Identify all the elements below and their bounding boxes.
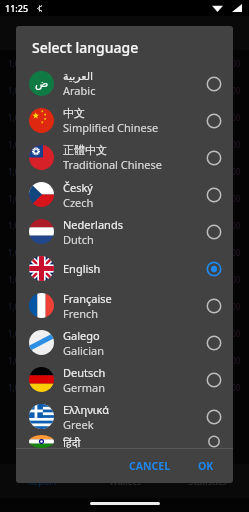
button[interactable]: Report [0, 475, 83, 487]
staticText: Report [27, 475, 57, 487]
button[interactable]: Wallets [83, 475, 166, 487]
staticText: Française [63, 291, 112, 306]
staticText: 1,000 [8, 382, 29, 393]
staticText: 中文 [63, 106, 85, 120]
button[interactable]: Galego [16, 324, 233, 361]
button[interactable]: 中文 [16, 102, 233, 139]
staticText: Arabic [63, 83, 96, 98]
staticText: Galego [63, 328, 100, 343]
button[interactable]: Ελληνικά [16, 398, 233, 435]
button[interactable]: हिंदी [16, 435, 233, 448]
staticText: Select language [32, 38, 139, 57]
staticText: 1,000 [220, 139, 241, 150]
staticText: Deutsch [63, 365, 106, 380]
staticText: Nederlands [63, 217, 123, 232]
staticText: 1,000 [8, 112, 29, 123]
staticText: 1,000 [8, 355, 29, 366]
staticText: ض [35, 77, 49, 90]
staticText: 1,000 [8, 139, 29, 150]
staticText: العربية [63, 70, 94, 83]
staticText: हिंदी [63, 435, 81, 448]
staticText: 1,000 [220, 193, 241, 204]
staticText: 1,000 [220, 328, 241, 339]
button[interactable]: Française [16, 287, 233, 324]
staticText: 1,000 [220, 112, 241, 123]
button[interactable]: Deutsch [16, 361, 233, 398]
other: Bluetooth [36, 5, 43, 12]
staticText: 1,000 [220, 85, 241, 96]
button[interactable]: OK [191, 454, 221, 478]
staticText: Wallets [109, 475, 141, 487]
staticText: 1,000 [220, 247, 241, 258]
staticText: 11:25 [5, 2, 29, 14]
staticText: French [63, 306, 99, 321]
staticText: Czech [63, 195, 94, 210]
staticText: 1,000 [220, 301, 241, 312]
staticText: 1,000 [8, 274, 29, 285]
staticText: Simplified Chinese [63, 120, 159, 135]
staticText: 1,000 [220, 274, 241, 285]
button[interactable]: English [16, 250, 233, 287]
other: Wi-Fi [212, 4, 223, 12]
staticText: 1,000 [8, 58, 29, 69]
staticText: 1,000 [8, 166, 29, 177]
staticText: OK [198, 459, 214, 473]
staticText: Dutch [63, 232, 94, 247]
staticText: Český [63, 180, 93, 195]
staticText: 1,000 [8, 301, 29, 312]
staticText: 1,000 [8, 328, 29, 339]
staticText: English [63, 261, 101, 276]
button[interactable]: Český [16, 176, 233, 213]
button[interactable]: Nederlands [16, 213, 233, 250]
staticText: 1,000 [220, 58, 241, 69]
staticText: 1,000 [220, 355, 241, 366]
staticText: Ελληνικά [63, 402, 110, 417]
staticText: Greek [63, 417, 94, 432]
staticText: 1,000 [8, 85, 29, 96]
staticText: Statistics [188, 475, 227, 487]
button[interactable]: 正體中文 [16, 139, 233, 176]
staticText: 1,000 [8, 247, 29, 258]
staticText: CANCEL [129, 459, 171, 473]
button[interactable]: Statistics [166, 475, 249, 487]
staticText: Galician [63, 343, 104, 358]
button[interactable]: ض [16, 65, 233, 102]
staticText: 1,000 [220, 382, 241, 393]
staticText: 1,000 [8, 220, 29, 231]
staticText: Traditional Chinese [63, 157, 162, 172]
staticText: 1,000 [220, 220, 241, 231]
staticText: 1,000 [8, 193, 29, 204]
staticText: German [63, 380, 106, 395]
button[interactable]: CANCEL [122, 454, 178, 478]
staticText: 正體中文 [63, 143, 107, 157]
staticText: 1,000 [220, 166, 241, 177]
other: Signal [232, 4, 242, 12]
